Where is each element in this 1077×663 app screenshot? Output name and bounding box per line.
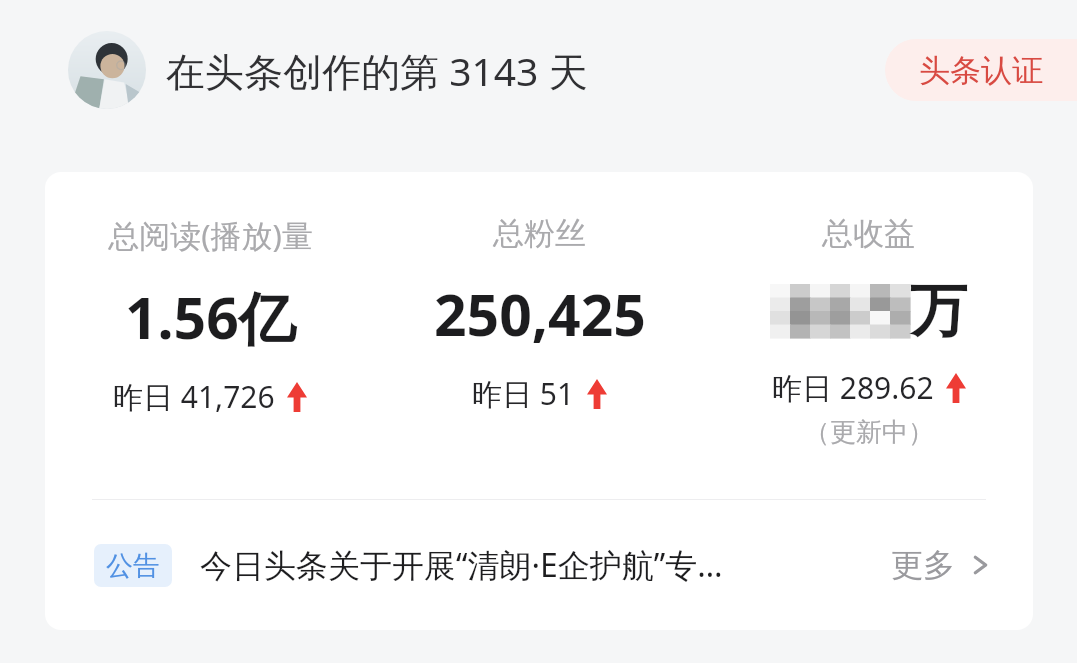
staticText: 今日头条关于开展“清朗·E企护航”专… bbox=[200, 543, 723, 587]
staticText: 1.56亿 bbox=[125, 278, 296, 356]
button[interactable]: 总阅读(播放)量 bbox=[45, 214, 375, 469]
staticText: 总收益 bbox=[822, 214, 915, 253]
staticText: 昨日 41,726 bbox=[113, 376, 275, 417]
staticText: 昨日 51 bbox=[472, 373, 575, 414]
staticText: 250,425 bbox=[434, 275, 646, 353]
staticText: 更多 bbox=[891, 545, 955, 585]
button[interactable]: 总收益 bbox=[704, 214, 1033, 469]
staticText: 万 bbox=[910, 275, 967, 347]
button[interactable]: Profile photo bbox=[68, 31, 146, 109]
staticText: （更新中） bbox=[804, 416, 934, 449]
staticText: 总粉丝 bbox=[493, 214, 586, 253]
button[interactable]: 头条认证 bbox=[885, 39, 1077, 101]
staticText: 昨日 289.62 bbox=[772, 367, 934, 408]
button[interactable]: 总粉丝 bbox=[375, 214, 704, 469]
staticText: 公告 bbox=[106, 549, 160, 583]
button[interactable]: 公告 bbox=[45, 500, 1033, 630]
staticText: 头条认证 bbox=[919, 51, 1043, 90]
button[interactable]: 在头条创作的第 3143 天 bbox=[166, 44, 588, 97]
staticText: 总阅读(播放)量 bbox=[108, 214, 313, 256]
